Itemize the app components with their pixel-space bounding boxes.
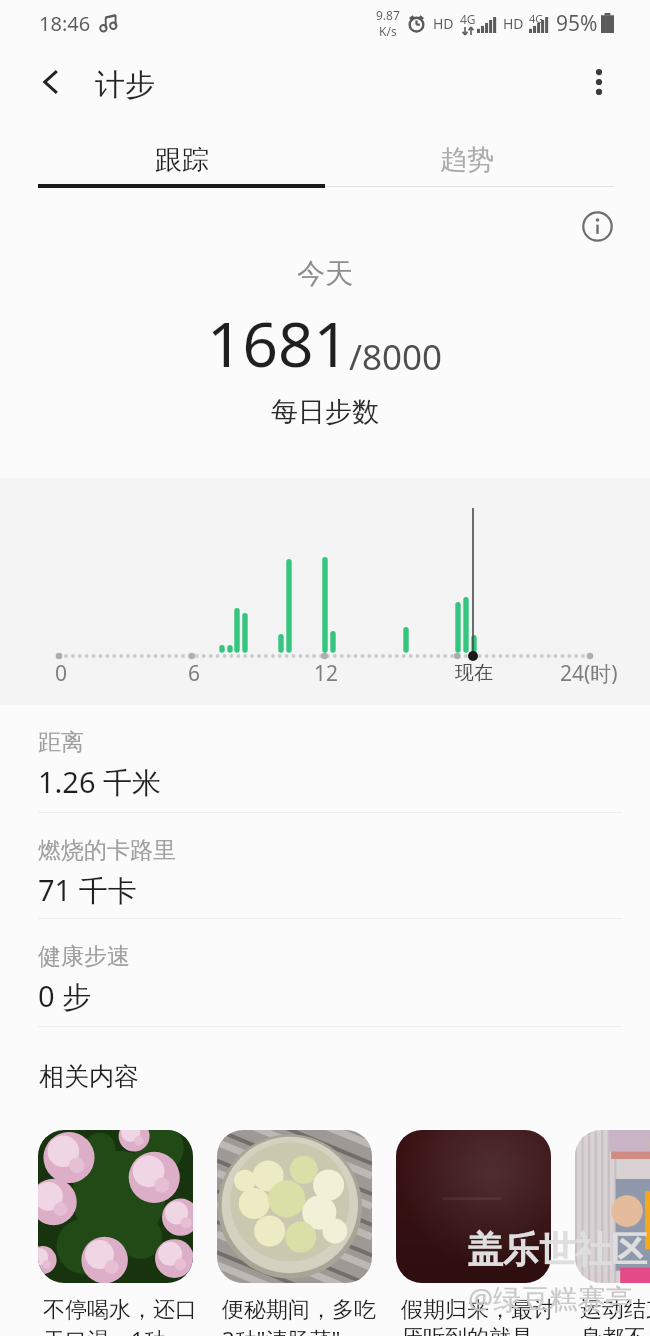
button[interactable]: 燃烧的卡路里 — [0, 813, 650, 919]
staticText: 趋势 — [440, 143, 494, 177]
staticText: @绿豆糕赛亭 — [468, 1279, 634, 1317]
staticText: 4G — [460, 11, 476, 27]
staticText: 相关内容 — [39, 1061, 139, 1092]
staticText: 假期归来，最讨 — [401, 1296, 555, 1324]
button[interactable]: 距离 — [0, 705, 650, 813]
staticText: 运动结束 — [580, 1296, 650, 1324]
staticText: 今天 — [297, 256, 353, 291]
staticText: K/s — [379, 23, 397, 39]
staticText: 3种"清肠菜" — [222, 1324, 341, 1336]
staticText: 现在 — [455, 661, 493, 685]
button[interactable]: More options — [577, 60, 621, 104]
staticText: 距离 — [38, 728, 84, 757]
button[interactable]: 健康步速 — [0, 919, 650, 1027]
staticText: HD — [433, 14, 454, 33]
staticText: 健康步速 — [38, 942, 130, 971]
staticText: 0 步 — [38, 976, 92, 1016]
staticText: HD — [503, 14, 524, 33]
button[interactable]: 便秘期间，多吃 — [217, 1130, 372, 1336]
staticText: 便秘期间，多吃 — [222, 1296, 376, 1324]
button[interactable]: 假期归来，最讨 — [396, 1130, 551, 1336]
staticText: 0 — [55, 659, 68, 688]
staticText: 厌听到的就是 — [401, 1324, 533, 1336]
staticText: 计步 — [95, 66, 155, 104]
staticText: 每日步数 — [271, 395, 379, 429]
button[interactable]: 跟踪 — [38, 131, 325, 189]
staticText: 4G — [529, 11, 544, 26]
staticText: 6 — [188, 659, 201, 688]
staticText: 燃烧的卡路里 — [38, 836, 176, 865]
staticText: 71 千卡 — [38, 870, 137, 910]
staticText: 1.26 千米 — [38, 762, 162, 802]
button[interactable]: 趋势 — [322, 131, 611, 189]
staticText: 18:46 — [39, 10, 91, 37]
staticText: 干口渴，1种 — [43, 1324, 166, 1336]
staticText: 身都不 — [580, 1324, 646, 1336]
staticText: 1681 — [207, 301, 349, 385]
button[interactable]: 运动结束 — [575, 1130, 650, 1336]
staticText: 盖乐世社区 — [467, 1227, 647, 1272]
staticText: 95% — [556, 9, 598, 38]
button[interactable]: Information — [575, 204, 619, 248]
staticText: 9.87 — [376, 7, 400, 23]
button[interactable]: 不停喝水，还口 — [38, 1130, 193, 1336]
staticText: 12 — [314, 659, 339, 688]
staticText: 跟踪 — [155, 143, 209, 177]
button[interactable]: Back — [28, 60, 72, 104]
staticText: 24(时) — [560, 659, 618, 688]
staticText: 不停喝水，还口 — [43, 1296, 197, 1324]
staticText: /8000 — [349, 333, 443, 381]
